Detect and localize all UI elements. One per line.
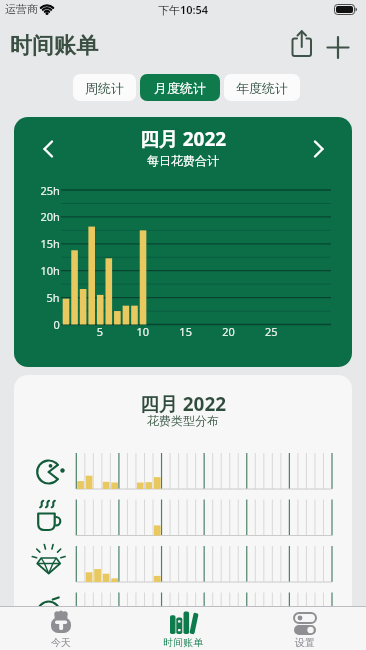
- staticText: 月度统计: [154, 80, 206, 96]
- staticText: 每日花费合计: [14, 153, 352, 168]
- button[interactable]: 设置: [268, 609, 342, 649]
- staticText: 四月 2022: [14, 391, 352, 417]
- staticText: 时间账单: [10, 32, 98, 60]
- button[interactable]: 周统计: [73, 74, 136, 101]
- staticText: 周统计: [85, 80, 124, 96]
- staticText: 年度统计: [236, 80, 288, 96]
- staticText: 下午10:54: [0, 2, 366, 17]
- staticText: 今天: [51, 636, 71, 649]
- staticText: 时间账单: [163, 636, 203, 649]
- button[interactable]: 月度统计: [140, 74, 220, 101]
- button[interactable]: 年度统计: [224, 74, 300, 101]
- button[interactable]: 今天: [24, 609, 98, 649]
- button[interactable]: [326, 36, 350, 60]
- button[interactable]: [286, 28, 317, 59]
- button[interactable]: [36, 139, 60, 163]
- button[interactable]: [307, 139, 331, 163]
- button[interactable]: 时间账单: [146, 609, 220, 649]
- staticText: 设置: [295, 636, 315, 649]
- staticText: 花费类型分布: [14, 413, 352, 428]
- staticText: 运营商: [5, 2, 38, 16]
- staticText: 四月 2022: [14, 126, 352, 152]
